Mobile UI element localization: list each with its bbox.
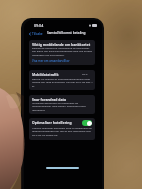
staticText: Tilbake: [32, 32, 43, 36]
staticText: Natverk tillganger aktiverats kraft til …: [32, 126, 93, 137]
staticText: Mobildatatrafik: [32, 72, 59, 77]
staticText: 09:04: [34, 23, 44, 28]
button[interactable]: Visa mer om anvandarvillkor: [32, 59, 70, 63]
staticText: Viktig meddelande om bankkortet: [32, 42, 91, 47]
staticText: Andringar genomfors av mobilnatet og rek…: [32, 101, 93, 112]
button[interactable]: Snar forandrad data: [29, 95, 95, 114]
staticText: Snar forandrad data: [32, 97, 66, 102]
button[interactable]: Mobildatatrafik: [29, 70, 95, 90]
staticText: Optimaliser hotellering: [32, 120, 72, 125]
button[interactable]: Tilbake: [28, 31, 44, 37]
button[interactable]: Viktig meddelande om bankkortet: [29, 40, 95, 65]
button[interactable]: Optimalisering pa: [82, 120, 92, 126]
staticText: Bankernas tillstand ar anvandning av mob…: [32, 46, 93, 57]
staticText: 28 %: [82, 72, 88, 75]
staticText: Samtal/tilkomst betaling: [47, 31, 86, 35]
staticText: Data ar en tillgang av mobildataanvandni…: [32, 77, 93, 88]
button[interactable]: Optimaliser hotellering: [29, 118, 95, 140]
